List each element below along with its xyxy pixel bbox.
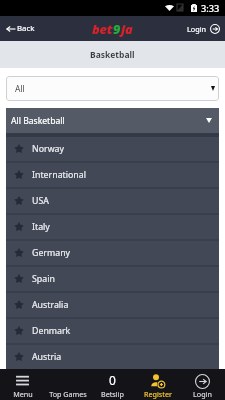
button[interactable]: Menu [0, 369, 45, 400]
staticText: Login [193, 389, 212, 399]
staticText: Spain [32, 273, 55, 285]
staticText: Menu [13, 389, 33, 399]
staticText: Register [144, 389, 172, 399]
staticText: Germany [32, 247, 71, 259]
button[interactable]: All [6, 76, 219, 101]
button[interactable]: Australia [6, 293, 219, 317]
button[interactable]: Italy [6, 215, 219, 239]
staticText: Norway [32, 143, 64, 155]
button[interactable]: Germany [6, 241, 219, 265]
button[interactable]: Back [6, 23, 35, 34]
staticText: Australia [32, 299, 69, 311]
staticText: All [15, 83, 25, 95]
staticText: ja [121, 20, 133, 37]
staticText: Back [17, 23, 35, 34]
staticText: All Basketball [11, 115, 65, 127]
staticText: USA [32, 195, 49, 207]
staticText: 3:33 [201, 2, 220, 15]
staticText: Austria [32, 351, 62, 363]
staticText: Italy [32, 221, 50, 233]
button[interactable]: Austria [6, 345, 219, 369]
staticText: International [32, 169, 86, 181]
button[interactable]: Norway [6, 137, 219, 161]
button[interactable]: Login [187, 24, 220, 34]
staticText: Betslip [101, 389, 124, 399]
staticText: 0 [109, 372, 116, 388]
button[interactable]: 0 [90, 369, 135, 400]
staticText: 9 [113, 20, 121, 37]
button[interactable]: Top Games [45, 369, 90, 400]
button[interactable]: USA [6, 189, 219, 213]
button[interactable]: Register [135, 369, 180, 400]
button[interactable]: Login [180, 369, 225, 400]
button[interactable]: International [6, 163, 219, 187]
staticText: Basketball [90, 49, 135, 61]
button[interactable]: All Basketball [6, 108, 219, 133]
button[interactable]: Spain [6, 267, 219, 291]
staticText: Top Games [49, 389, 87, 399]
staticText: bet [92, 20, 113, 37]
staticText: Login [187, 24, 207, 34]
staticText: Denmark [32, 325, 71, 337]
button[interactable]: Denmark [6, 319, 219, 343]
